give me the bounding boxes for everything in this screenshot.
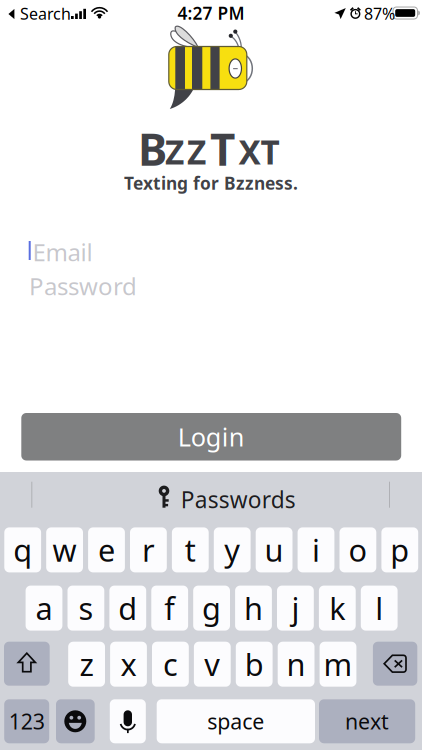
staticText: r (142, 529, 155, 570)
staticText: t (185, 529, 196, 570)
button[interactable]: z (68, 642, 105, 687)
button[interactable]: r (130, 527, 167, 572)
staticText: e (98, 529, 115, 570)
staticText: b (245, 644, 264, 684)
button[interactable]: Emoji (56, 699, 95, 743)
staticText: l (375, 588, 383, 628)
staticText: 4:27 PM (177, 1, 244, 24)
button[interactable]: n (278, 642, 314, 687)
staticText: o (348, 529, 367, 570)
staticText: g (202, 588, 221, 628)
staticText: Z (187, 129, 206, 174)
button[interactable]: b (236, 642, 273, 687)
button[interactable]: g (193, 586, 230, 631)
staticText: Login (178, 420, 245, 453)
button[interactable]: k (319, 586, 356, 631)
button[interactable]: Password (29, 273, 329, 299)
button[interactable]: Delete (373, 642, 417, 686)
button[interactable]: e (88, 527, 125, 572)
staticText: Password (29, 270, 137, 302)
button[interactable]: Dictate (110, 699, 146, 743)
button[interactable]: p (381, 527, 418, 572)
staticText: x (120, 644, 136, 684)
staticText: Z (165, 129, 184, 174)
button[interactable]: f (151, 586, 188, 631)
staticText: h (244, 588, 263, 628)
staticText: d (118, 588, 137, 628)
button[interactable]: j (277, 586, 314, 631)
button[interactable]: o (339, 527, 376, 572)
staticText: w (53, 529, 77, 570)
staticText: k (329, 588, 345, 628)
staticText: X (238, 129, 260, 174)
button[interactable]: h (235, 586, 272, 631)
staticText: B (138, 119, 167, 178)
button[interactable]: space (157, 699, 315, 743)
staticText: c (163, 644, 178, 684)
button[interactable]: Shift (4, 642, 50, 686)
button[interactable]: 123 (4, 699, 49, 743)
staticText: Passwords (181, 484, 296, 515)
staticText: T (210, 119, 235, 178)
staticText: 123 (9, 707, 45, 735)
staticText: q (13, 529, 32, 570)
staticText: f (164, 588, 175, 628)
staticText: Email (32, 236, 92, 268)
staticText: space (207, 707, 264, 735)
button[interactable]: x (110, 642, 147, 687)
button[interactable]: next (319, 699, 415, 743)
button[interactable]: d (109, 586, 146, 631)
staticText: i (312, 529, 320, 570)
staticText: next (345, 707, 389, 735)
staticText: a (35, 588, 52, 628)
staticText: Search (20, 3, 71, 24)
staticText: Texting for Bzzness. (124, 171, 298, 194)
button[interactable]: a (26, 586, 62, 631)
button[interactable]: m (320, 642, 356, 687)
button[interactable]: i (298, 527, 334, 572)
staticText: j (291, 588, 299, 628)
button[interactable]: Login (21, 413, 401, 460)
staticText: p (390, 529, 409, 570)
staticText: 87% (364, 3, 395, 24)
button[interactable]: s (67, 586, 104, 631)
staticText: z (80, 644, 94, 684)
staticText: s (78, 588, 93, 628)
button[interactable]: q (4, 527, 41, 572)
staticText: m (323, 644, 352, 684)
button[interactable]: l (361, 586, 398, 631)
staticText: v (204, 644, 220, 684)
button[interactable]: y (214, 527, 251, 572)
button[interactable]: u (256, 527, 292, 572)
button[interactable]: t (172, 527, 209, 572)
button[interactable]: v (194, 642, 231, 687)
staticText: y (224, 529, 240, 570)
staticText: u (265, 529, 284, 570)
button[interactable]: w (46, 527, 83, 572)
button[interactable]: Passwords (158, 484, 288, 509)
button[interactable]: c (152, 642, 189, 687)
staticText: n (287, 644, 306, 684)
staticText: T (260, 129, 279, 174)
button[interactable]: Email (32, 239, 332, 265)
